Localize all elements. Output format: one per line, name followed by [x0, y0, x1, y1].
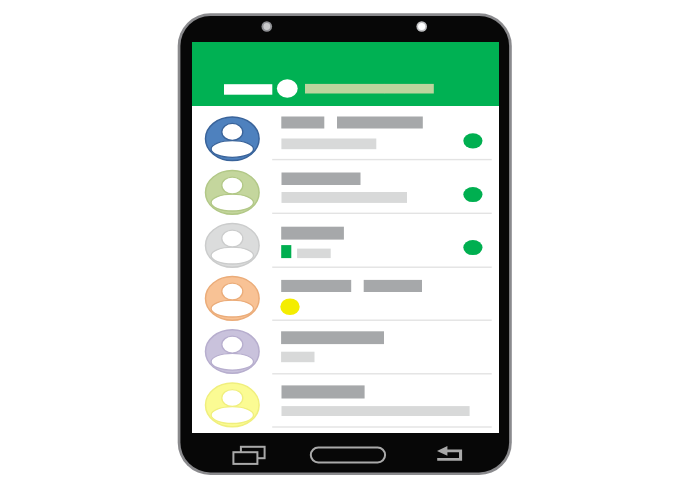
button[interactable]: Recent apps [231, 444, 267, 468]
button[interactable]: Chats tab, selected [218, 80, 293, 106]
button[interactable]: Conversation 3 [192, 213, 499, 267]
button[interactable]: Home [306, 444, 390, 468]
button[interactable]: Conversation 4 [192, 267, 499, 320]
button[interactable]: Conversation 2 [192, 160, 499, 213]
button[interactable]: Conversation 6 [192, 374, 499, 427]
button[interactable]: Status tab [305, 80, 402, 106]
button[interactable]: Conversation 5 [192, 320, 499, 374]
button[interactable]: Back [431, 444, 469, 468]
button[interactable]: Calls tab [384, 80, 434, 106]
button[interactable]: Conversation 1 [192, 106, 499, 160]
